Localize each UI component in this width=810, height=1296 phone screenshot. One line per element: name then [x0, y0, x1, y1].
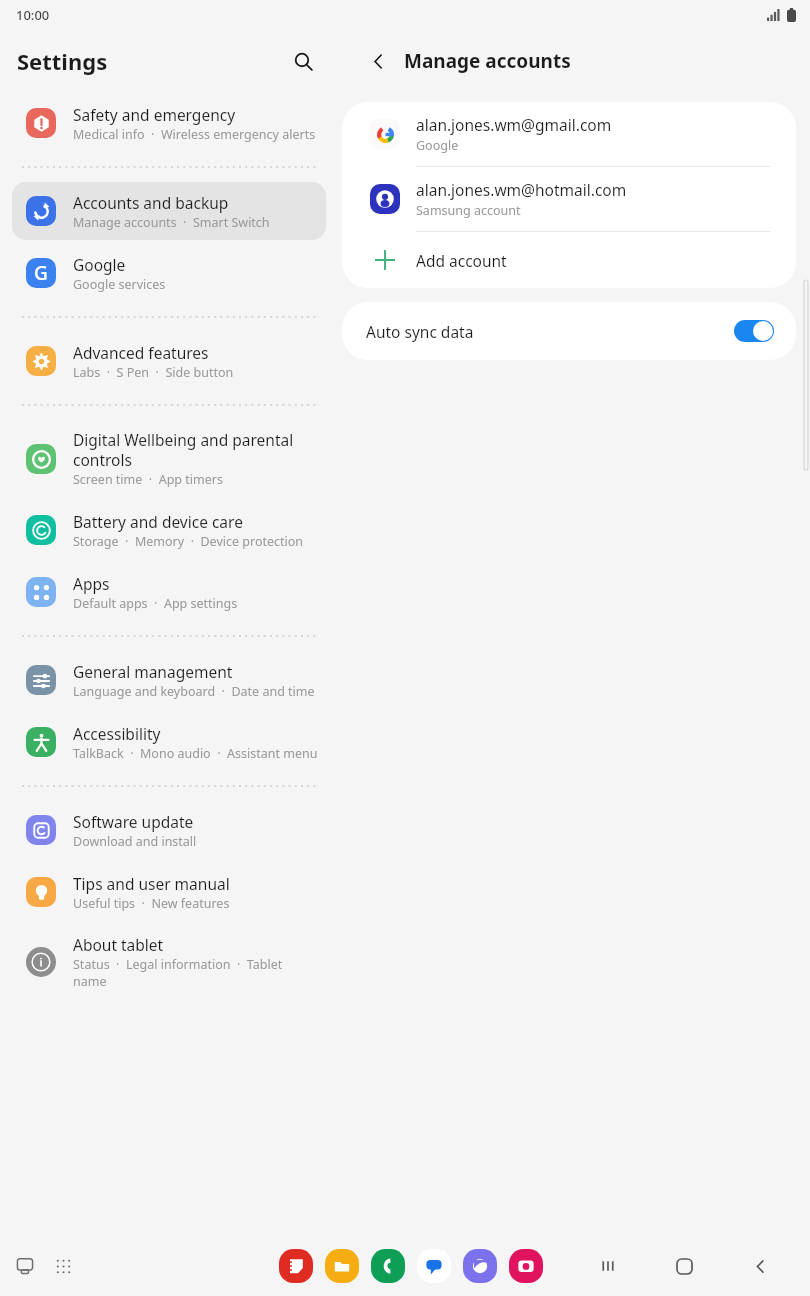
staticText: alan.jones.wm@gmail.com [416, 114, 612, 135]
button[interactable]: Back [742, 1248, 778, 1284]
button[interactable]: General management [12, 651, 326, 709]
staticText: About tablet [73, 934, 164, 955]
staticText: Storage · Memory · Device protection [73, 533, 304, 550]
button[interactable]: Tips and user manual [12, 863, 326, 921]
staticText: Google [73, 254, 126, 275]
button[interactable]: Phone [371, 1249, 405, 1283]
staticText: Manage accounts [404, 48, 571, 74]
button[interactable]: Battery and device care [12, 501, 326, 559]
button[interactable]: Messages [417, 1249, 451, 1283]
button[interactable]: Internet [463, 1249, 497, 1283]
staticText: 10:00 [16, 6, 50, 24]
staticText: Google services [73, 276, 166, 293]
button[interactable]: Camera [509, 1249, 543, 1283]
button[interactable]: Software update [12, 801, 326, 859]
button[interactable]: About tablet [12, 925, 326, 999]
staticText: Software update [73, 811, 194, 832]
staticText: Add account [416, 250, 507, 271]
button[interactable]: Accounts and backup [12, 182, 326, 240]
staticText: Google [416, 137, 459, 154]
staticText: Accounts and backup [73, 192, 229, 213]
staticText: Default apps · App settings [73, 595, 238, 612]
staticText: Accessibility [73, 723, 161, 744]
button[interactable]: Home [666, 1248, 702, 1284]
button[interactable]: Search [286, 44, 320, 78]
button[interactable]: All apps [46, 1249, 80, 1283]
staticText: TalkBack · Mono audio · Assistant menu [73, 745, 318, 762]
button[interactable]: Accessibility [12, 713, 326, 771]
button[interactable]: G [12, 244, 326, 302]
button[interactable]: Recent apps [590, 1248, 626, 1284]
staticText: G [34, 260, 48, 286]
staticText: Auto sync data [366, 321, 734, 342]
staticText: Medical info · Wireless emergency alerts [73, 126, 316, 143]
staticText: Advanced features [73, 342, 209, 363]
staticText: Manage accounts · Smart Switch [73, 214, 270, 231]
button[interactable]: Digital Wellbeing and parental controls [12, 420, 326, 497]
staticText: alan.jones.wm@hotmail.com [416, 179, 627, 200]
staticText: Apps [73, 573, 110, 594]
staticText: Tips and user manual [73, 873, 230, 894]
staticText: Safety and emergency [73, 104, 236, 125]
staticText: Screen time · App timers [73, 471, 223, 488]
staticText: General management [73, 661, 233, 682]
button[interactable]: alan.jones.wm@hotmail.com [342, 167, 796, 231]
button[interactable]: Add account [342, 232, 796, 288]
button[interactable]: Apps [12, 563, 326, 621]
staticText: Language and keyboard · Date and time [73, 683, 315, 700]
staticText: Status · Legal information · Tablet name [73, 956, 318, 990]
staticText: Samsung account [416, 202, 521, 219]
button[interactable]: Auto sync data [342, 302, 796, 360]
button[interactable]: Advanced features [12, 332, 326, 390]
button[interactable]: Recents [8, 1249, 42, 1283]
staticText: Labs · S Pen · Side button [73, 364, 234, 381]
staticText: Download and install [73, 833, 197, 850]
button[interactable]: Samsung Notes [279, 1249, 313, 1283]
staticText: Battery and device care [73, 511, 243, 532]
staticText: Settings [17, 46, 108, 76]
button[interactable]: Safety and emergency [12, 94, 326, 152]
button[interactable]: alan.jones.wm@gmail.com [342, 102, 796, 166]
staticText: Digital Wellbeing and parental controls [73, 429, 318, 470]
button[interactable]: My Files [325, 1249, 359, 1283]
staticText: Useful tips · New features [73, 895, 230, 912]
button[interactable]: Back [362, 45, 394, 77]
